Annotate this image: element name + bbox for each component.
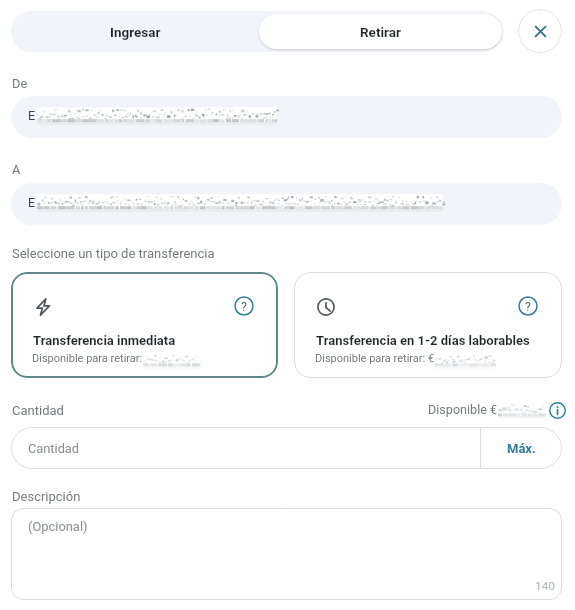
staticText: (Opcional): [28, 519, 88, 534]
button[interactable]: Ayuda: [517, 295, 539, 317]
button[interactable]: Retirar: [259, 14, 502, 49]
staticText: E: [28, 108, 36, 123]
staticText: De: [12, 76, 28, 91]
button[interactable]: Ingresar: [11, 11, 259, 52]
staticText: ?: [525, 299, 531, 314]
staticText: Retirar: [360, 24, 401, 40]
button[interactable]: Cerrar: [518, 9, 562, 53]
button[interactable]: Ayuda: [294, 272, 562, 378]
staticText: Cantidad: [12, 403, 64, 418]
staticText: Seleccione un tipo de transferencia: [12, 246, 215, 261]
button[interactable]: Máx.: [481, 427, 562, 469]
staticText: Transferencia inmediata: [33, 333, 176, 348]
button[interactable]: Cantidad: [11, 427, 480, 469]
staticText: E: [28, 195, 36, 210]
staticText: Descripción: [12, 489, 81, 504]
staticText: Ingresar: [110, 24, 161, 40]
button[interactable]: E: [11, 183, 562, 225]
button[interactable]: Ayuda: [11, 272, 278, 378]
staticText: A: [12, 162, 21, 177]
staticText: Cantidad: [28, 441, 80, 456]
staticText: Disponible para retirar:: [32, 352, 143, 365]
button[interactable]: E: [11, 96, 562, 138]
staticText: 140: [535, 579, 555, 593]
button[interactable]: (Opcional): [11, 508, 562, 600]
staticText: Disponible para retirar: €: [315, 352, 435, 365]
staticText: ?: [241, 299, 247, 314]
staticText: Máx.: [507, 441, 536, 456]
staticText: Transferencia en 1-2 días laborables: [316, 333, 530, 348]
button[interactable]: Ayuda: [233, 295, 255, 317]
staticText: Disponible €: [428, 402, 498, 417]
button[interactable]: Información: [548, 401, 566, 419]
